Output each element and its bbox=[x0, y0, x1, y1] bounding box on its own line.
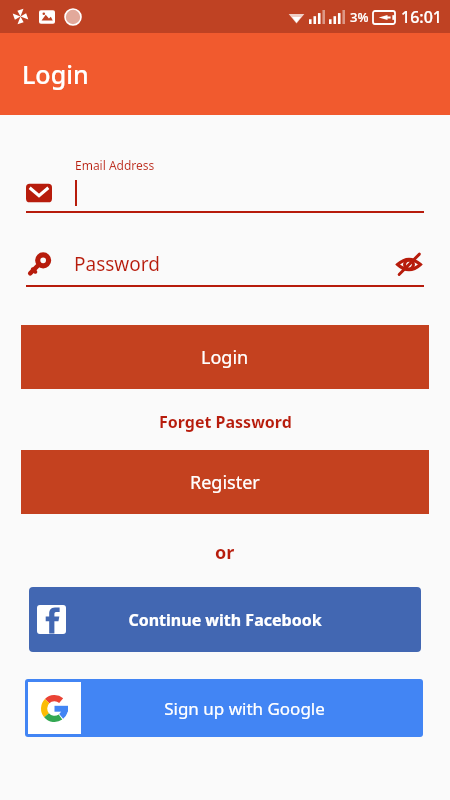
button[interactable]: Sign up with Google bbox=[25, 679, 423, 737]
staticText: Email Address bbox=[75, 157, 155, 173]
staticText: or bbox=[215, 540, 235, 565]
other: Password bbox=[26, 251, 52, 277]
staticText: 3% bbox=[350, 8, 369, 26]
button[interactable]: Login bbox=[21, 325, 429, 389]
staticText: Register bbox=[190, 470, 260, 495]
button[interactable]: Continue with Facebook bbox=[29, 587, 421, 652]
staticText: Login bbox=[22, 57, 89, 91]
staticText: Continue with Facebook bbox=[128, 609, 322, 631]
staticText: Forget Password bbox=[159, 411, 292, 433]
button[interactable]: Register bbox=[21, 450, 429, 514]
staticText: Login bbox=[201, 345, 249, 370]
staticText: Password bbox=[74, 251, 394, 277]
staticText: Sign up with Google bbox=[164, 697, 325, 720]
button[interactable]: Show password bbox=[394, 249, 424, 279]
staticText: 16:01 bbox=[401, 6, 442, 28]
button[interactable]: Forget Password bbox=[151, 408, 300, 436]
